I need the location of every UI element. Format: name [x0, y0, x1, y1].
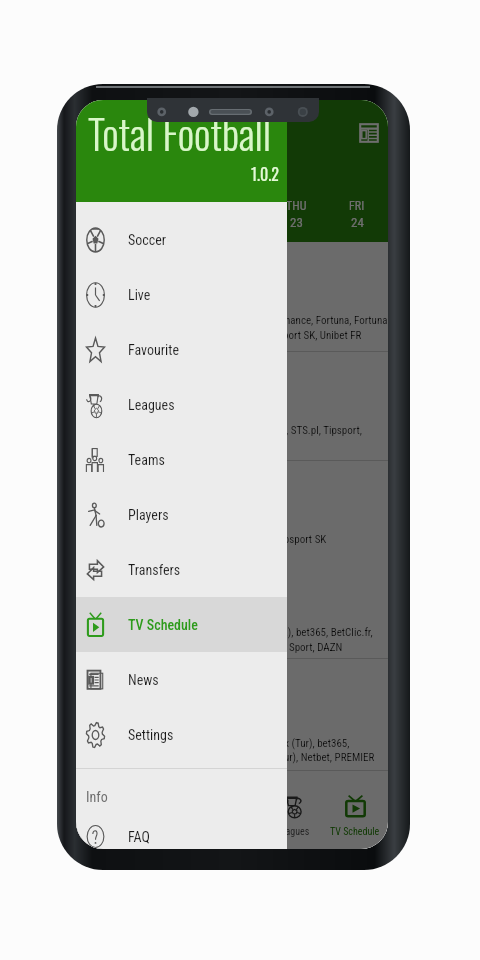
staticText: PL, STS.pl, Tipsport SK, Unibet FR — [216, 329, 362, 342]
button[interactable]: Leagues — [76, 377, 287, 432]
button[interactable]: WED — [205, 199, 265, 255]
staticText: TV Schedule — [330, 826, 380, 838]
staticText: 1.0.2 — [251, 162, 279, 186]
button[interactable]: THU — [266, 199, 326, 255]
button[interactable]: SUN — [76, 199, 82, 255]
button[interactable]: Players — [76, 487, 287, 542]
staticText: Soccer — [93, 826, 121, 838]
staticText: FAQ — [128, 829, 150, 845]
staticText: THU — [286, 199, 307, 213]
button[interactable]: News — [76, 652, 287, 707]
staticText: Total Football — [88, 102, 272, 163]
button[interactable]: Soccer — [76, 771, 138, 849]
button[interactable]: FAQ — [76, 824, 287, 849]
button[interactable]: TUE — [144, 199, 204, 255]
staticText: 24 — [351, 215, 364, 230]
staticText: 23 — [290, 215, 303, 230]
staticText: Betano.de, Chance, Tipsport SK — [190, 533, 327, 546]
staticText: Soccer — [128, 232, 167, 248]
staticText: News — [128, 672, 159, 688]
staticText: Teams — [128, 452, 165, 468]
staticText: Admiralbet.it, Chance, Fortuna, Fortuna — [218, 314, 388, 327]
staticText: Eurosport 1, NOTE Sport, DAZN — [207, 641, 343, 654]
staticText: Leagues — [128, 397, 175, 413]
button[interactable]: Transfers — [76, 542, 287, 597]
button[interactable]: Live — [138, 771, 200, 849]
staticText: FRI — [349, 199, 365, 213]
staticText: TV Schedule — [128, 617, 198, 633]
staticText: Bilyoner, beIN Sports Max (Tur), bet365, — [178, 737, 350, 750]
button[interactable]: Settings — [76, 707, 287, 762]
staticText: Leagues — [276, 826, 310, 838]
button[interactable]: Soccer — [76, 212, 287, 267]
staticText: Info — [86, 789, 108, 805]
button[interactable]: MON — [83, 199, 143, 255]
staticText: Live — [128, 287, 151, 303]
staticText: TV Schedule — [90, 123, 175, 143]
staticText: TUE — [165, 199, 184, 213]
staticText: WED — [224, 199, 246, 213]
staticText: Players — [128, 507, 169, 523]
button[interactable]: Live — [76, 267, 287, 322]
staticText: MON — [101, 199, 125, 213]
staticText: Transfers — [128, 562, 181, 578]
button[interactable]: Leagues — [262, 771, 324, 849]
staticText: Betano.de, Chance, STS.pl, Tipsport, — [205, 424, 362, 437]
button[interactable]: Favourite — [76, 322, 287, 377]
button[interactable]: FRI — [327, 199, 387, 255]
button[interactable]: Table view — [350, 114, 388, 152]
staticText: Settings — [128, 727, 174, 743]
staticText: Tivibu Spor (Tur), Netbet, PREMIER — [224, 751, 375, 764]
staticText: bet365 (Italia), bet365, BetClic.fr, — [230, 626, 373, 639]
button[interactable]: TV Schedule — [76, 597, 287, 652]
button[interactable]: TV Schedule — [324, 771, 386, 849]
staticText: Favourite — [128, 342, 179, 358]
button[interactable]: Teams — [76, 432, 287, 487]
